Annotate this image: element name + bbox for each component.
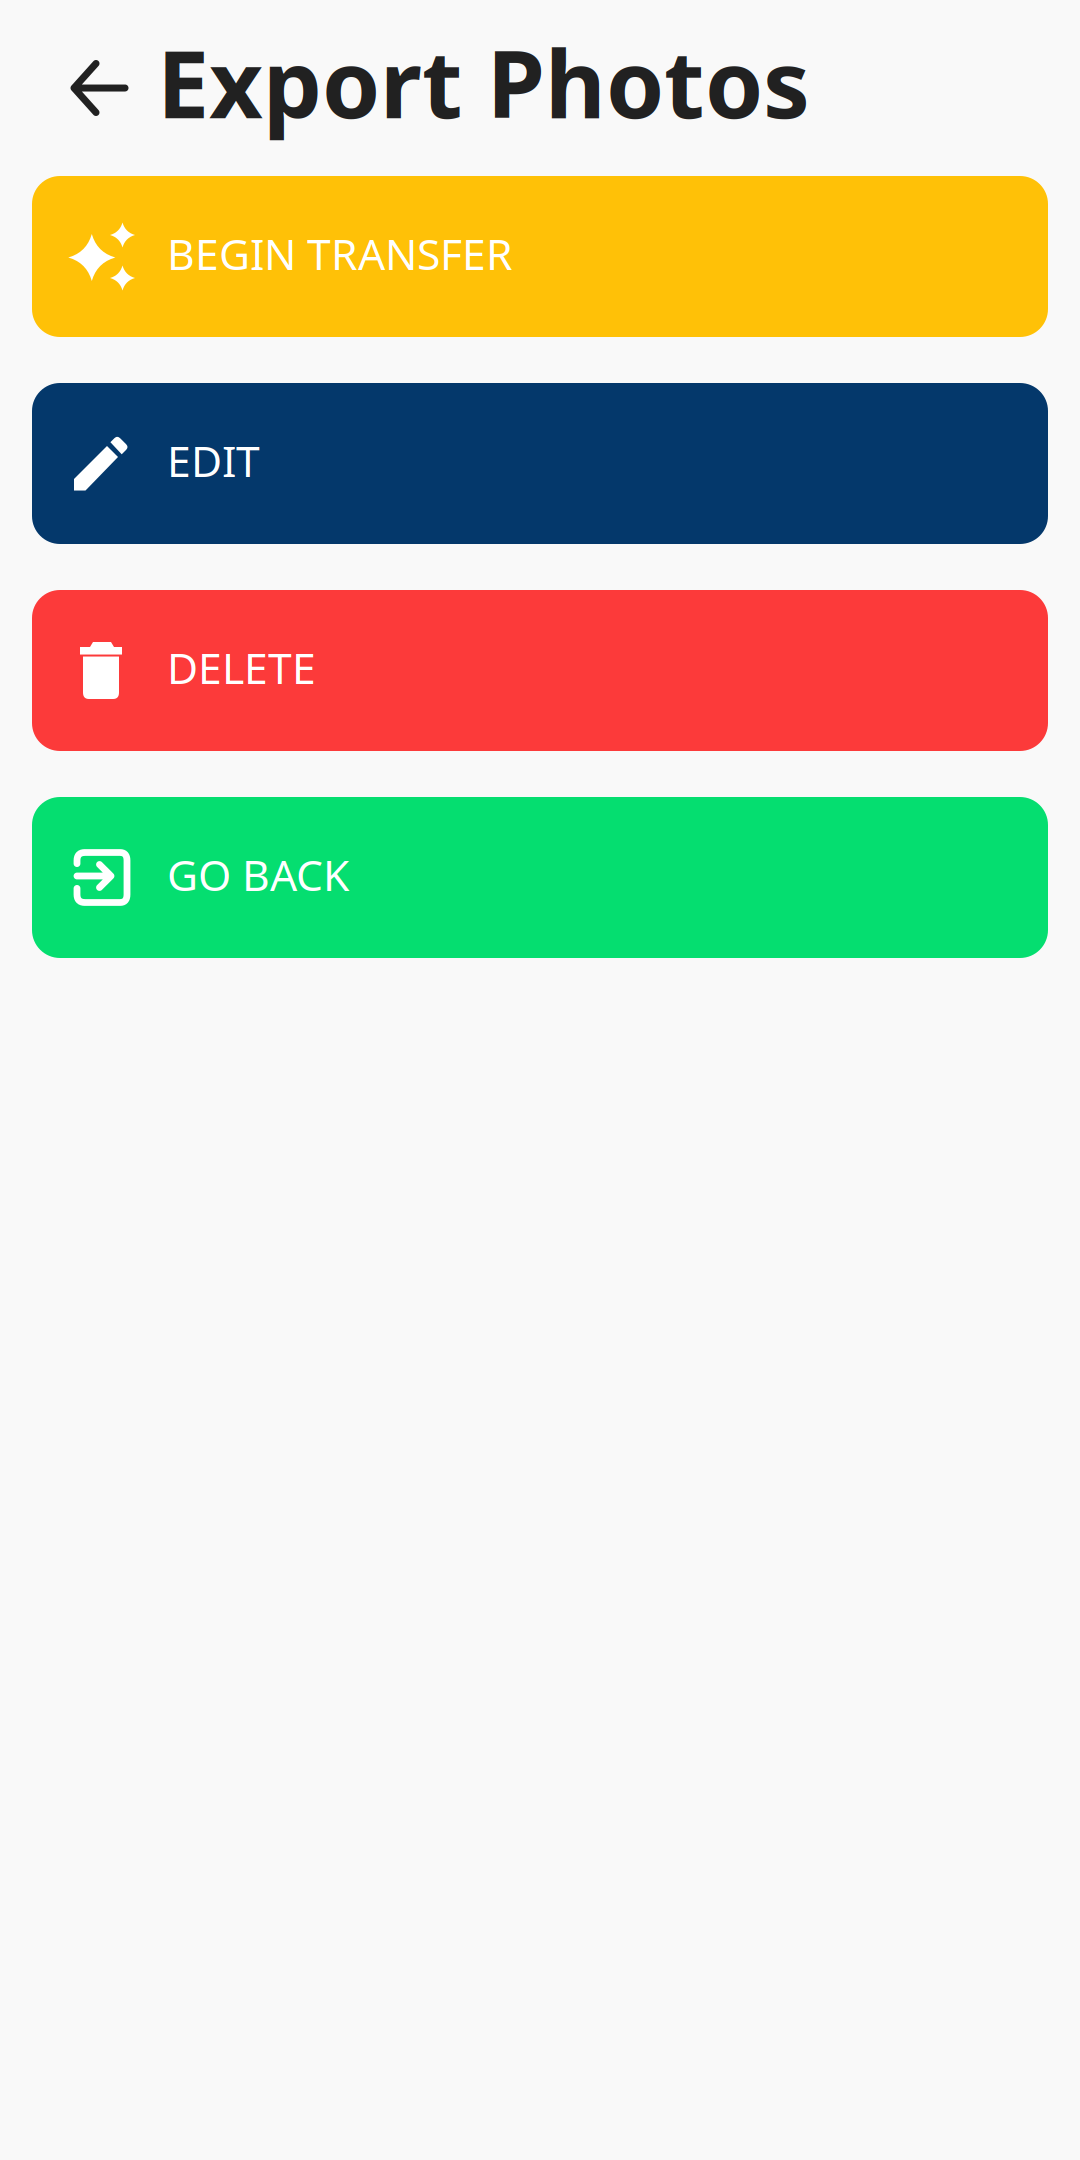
button[interactable]: DELETE — [32, 590, 1048, 751]
staticText: BEGIN TRANSFER — [167, 225, 513, 282]
button[interactable]: GO BACK — [32, 797, 1048, 958]
button[interactable]: Back — [0, 60, 157, 116]
button[interactable]: BEGIN TRANSFER — [32, 176, 1048, 337]
staticText: DELETE — [167, 639, 316, 696]
button[interactable]: EDIT — [32, 383, 1048, 544]
staticText: EDIT — [167, 432, 260, 489]
staticText: Export Photos — [157, 20, 810, 144]
staticText: GO BACK — [167, 846, 349, 903]
